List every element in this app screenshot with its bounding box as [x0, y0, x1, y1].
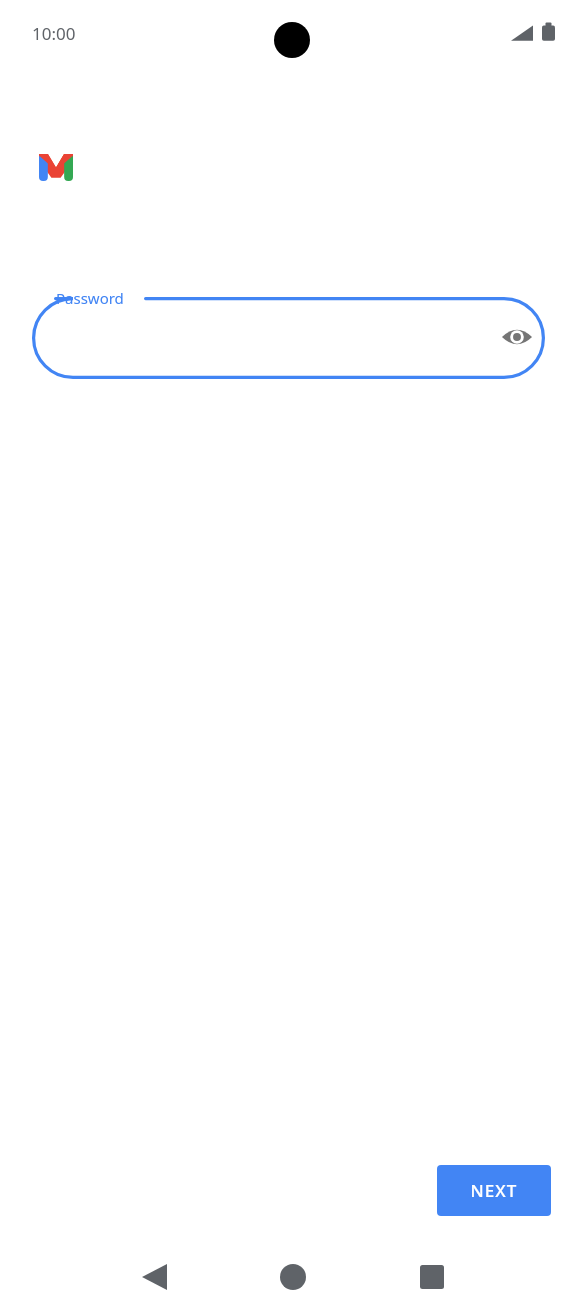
button[interactable]: Show password	[493, 313, 541, 361]
button[interactable]: Back	[114, 1237, 194, 1310]
button[interactable]: Recent apps	[392, 1237, 472, 1310]
staticText: 10:00	[32, 22, 76, 45]
other: Gmail	[39, 154, 73, 181]
button[interactable]	[32, 297, 545, 379]
staticText: NEXT	[470, 1179, 518, 1202]
button[interactable]: Home	[253, 1237, 333, 1310]
button[interactable]: NEXT	[437, 1165, 551, 1216]
staticText: Password	[56, 288, 124, 308]
